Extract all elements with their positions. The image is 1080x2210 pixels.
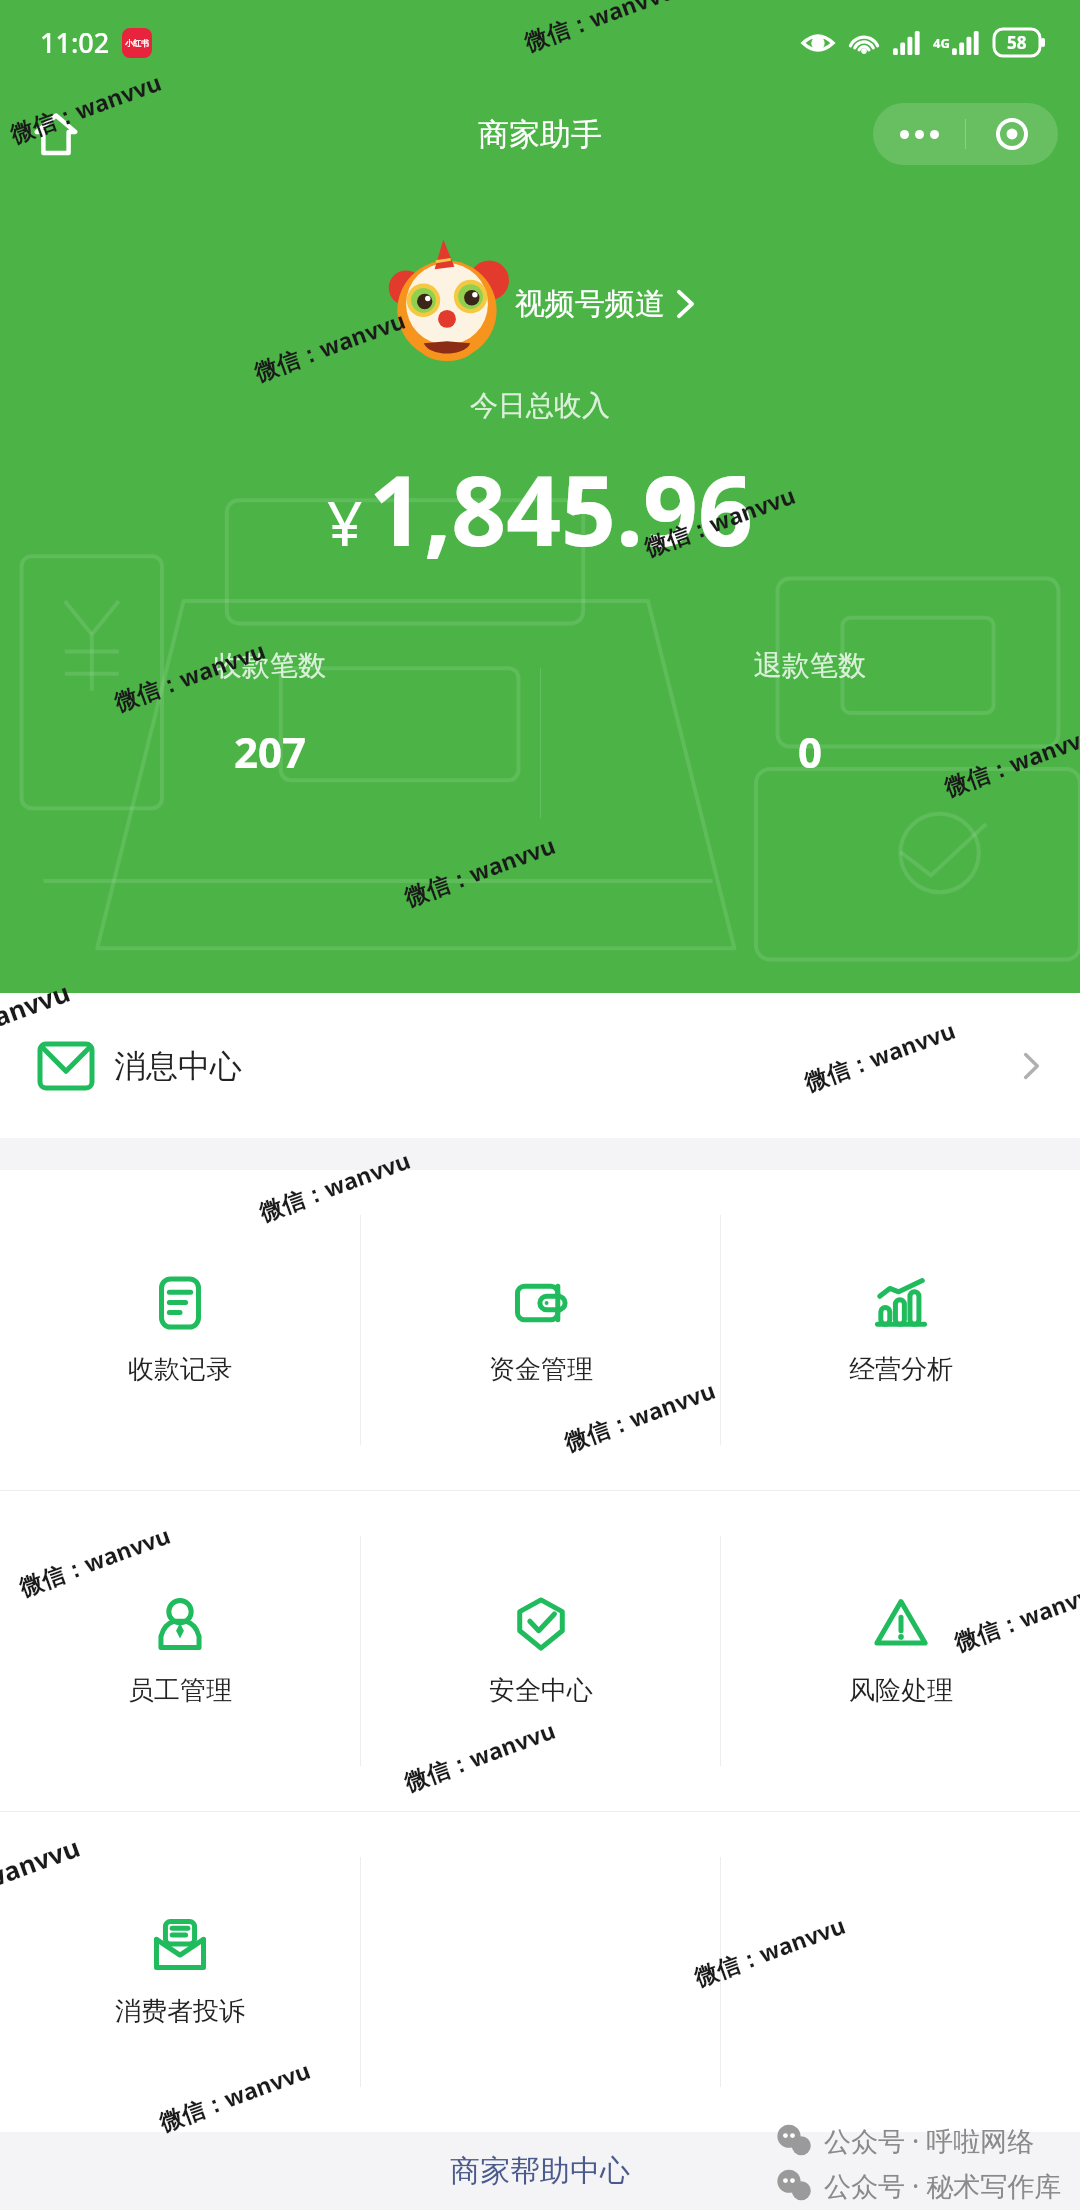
staticText: ¥ [327,480,363,564]
staticText: 消费者投诉 [115,1995,245,2028]
staticText: 收款记录 [128,1353,232,1386]
staticText: 收款笔数 [214,648,326,683]
button[interactable]: 风险处理 [721,1491,1080,1811]
staticText: 4G [933,34,950,52]
staticText: 公众号 · 呼啦网络 [824,2122,1035,2159]
staticText: 商家帮助中心 [450,2152,630,2190]
staticText: 微信：wanvvu [5,66,165,149]
staticText: 微信：wanvvu [399,1714,559,1797]
staticText: 视频号频道 [515,285,665,323]
staticText: 微信：wanvvu [154,2054,314,2137]
button[interactable]: 安全中心 [361,1491,720,1811]
staticText: 微信：wanvvu [254,1144,414,1227]
button[interactable]: 首页 [24,102,88,166]
staticText: 微信：wanvvu [799,1014,959,1097]
staticText: 微信：wanvvu [109,634,269,717]
staticText: 微信：wanvvu [559,1374,719,1457]
staticText: 58 [1007,31,1027,54]
staticText: 207 [234,723,307,780]
staticText: 公众号 · 秘术写作库 [824,2167,1062,2204]
button[interactable]: 消息中心 [0,993,1080,1138]
staticText: 微信：wanvvu [399,829,559,912]
button[interactable]: 退款笔数 [540,648,1080,780]
staticText: wanvvu [0,1829,85,1896]
staticText: 微信：wanvvu [949,1574,1080,1657]
button[interactable]: 胶囊菜单 [966,103,1058,165]
staticText: 员工管理 [128,1674,232,1707]
staticText: wanvvu [0,974,75,1041]
staticText: 风险处理 [849,1674,953,1707]
staticText: 小红书 [125,38,149,48]
staticText: 今日总收入 [470,388,610,423]
staticText: 经营分析 [849,1353,953,1386]
button[interactable]: 资金管理 [361,1170,720,1490]
staticText: 资金管理 [489,1353,593,1386]
button[interactable]: 收款记录 [0,1170,360,1490]
staticText: 微信：wanvvu [689,1909,849,1992]
staticText: 11:02 [40,24,110,61]
staticText: 微信：wanvvu [249,304,409,387]
staticText: 退款笔数 [754,648,866,683]
staticText: 0 [798,723,823,780]
staticText: 商家助手 [478,115,602,154]
button[interactable]: 经营分析 [721,1170,1080,1490]
button[interactable]: 员工管理 [0,1491,360,1811]
staticText: 1,845.96 [369,443,753,574]
staticText: 安全中心 [489,1674,593,1707]
button[interactable]: 消费者投诉 [0,1812,360,2132]
button[interactable]: 视频号频道 [0,242,1080,366]
button[interactable]: 更多 [873,103,965,165]
button[interactable]: 收款笔数 [0,648,540,780]
staticText: 微信：wanvvu [519,0,679,57]
staticText: 微信：wanvvu [14,1519,174,1602]
staticText: 消息中心 [114,1046,242,1086]
staticText: 微信：wanvvu [639,479,799,562]
staticText: 微信：wanvvu [939,719,1080,802]
